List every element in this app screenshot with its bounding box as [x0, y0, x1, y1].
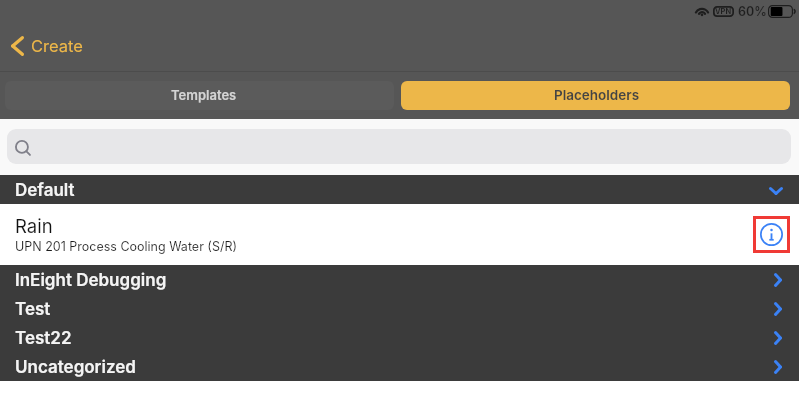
button[interactable]: Back [0, 37, 93, 57]
button[interactable]: Uncategorized [0, 352, 799, 381]
other: Search [15, 140, 32, 157]
other: Collapse [769, 187, 783, 195]
button[interactable]: Test22 [0, 323, 799, 352]
staticText: Test22 [15, 328, 72, 349]
other: Expand [774, 273, 782, 287]
button[interactable]: Search [7, 129, 791, 164]
button[interactable]: Info [753, 216, 790, 253]
button[interactable]: Templates [5, 81, 394, 110]
button[interactable]: Default [0, 175, 799, 204]
other: Expand [774, 331, 782, 345]
staticText: Test [15, 299, 51, 320]
staticText: Create [31, 36, 83, 56]
staticText: Uncategorized [15, 357, 136, 378]
staticText: UPN 201 Process Cooling Water (S/R) [15, 239, 238, 254]
staticText: VPN [715, 7, 732, 16]
button[interactable]: Rain [0, 204, 799, 265]
button[interactable]: InEight Debugging [0, 265, 799, 294]
button[interactable]: Placeholders [401, 81, 790, 110]
staticText: Rain [15, 215, 53, 237]
other: Back [11, 36, 24, 56]
staticText: Default [15, 180, 75, 201]
other: Expand [774, 360, 782, 374]
staticText: InEight Debugging [15, 270, 167, 291]
button[interactable]: Test [0, 294, 799, 323]
staticText: Placeholders [554, 87, 640, 103]
staticText: 60% [738, 4, 767, 19]
other: Expand [774, 302, 782, 316]
staticText: Templates [171, 87, 237, 103]
